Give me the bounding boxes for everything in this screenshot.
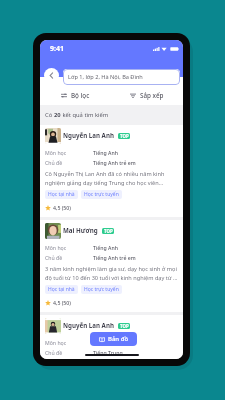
staticText: Tiếng Anh — [93, 149, 119, 156]
staticText: 4,5 (50) — [53, 299, 71, 306]
staticText: Tiếng Trung — [93, 349, 123, 356]
button[interactable]: Back — [44, 68, 59, 83]
staticText: kết quả tìm kiếm — [61, 111, 109, 119]
button[interactable]: Mai Hương — [40, 220, 183, 312]
staticText: TOP — [120, 133, 129, 139]
staticText: Mai Hương — [63, 226, 98, 234]
staticText: 9:41 — [50, 44, 64, 54]
staticText: Bộ lọc — [71, 91, 90, 100]
staticText: Học trực tuyến — [84, 191, 119, 198]
staticText: Nguyễn Lan Anh — [63, 131, 114, 139]
staticText: Cô Nguyễn Thị Lan Anh đã có nhiều năm ki… — [45, 170, 178, 186]
button[interactable]: Học trực tuyến — [81, 190, 122, 199]
staticText: Học tại nhà — [48, 286, 75, 293]
staticText: Chủ đề — [45, 349, 63, 356]
staticText: TOP — [120, 323, 129, 329]
staticText: Có — [45, 111, 54, 119]
staticText: Lớp 1, lớp 2, Hà Nội, Ba Đình — [68, 73, 143, 81]
staticText: Sắp xếp — [140, 91, 164, 100]
button[interactable]: Học trực tuyến — [81, 285, 122, 294]
staticText: Tiếng Anh trẻ em — [93, 254, 136, 261]
button[interactable]: Học tại nhà — [45, 285, 78, 294]
staticText: 4,5 (50) — [53, 204, 71, 211]
staticText: 20 — [54, 111, 61, 119]
button[interactable]: Bản đồ — [90, 332, 137, 346]
staticText: Tiếng Anh trẻ em — [93, 159, 136, 166]
staticText: Môn học — [45, 149, 67, 156]
staticText: Tiếng Anh — [93, 244, 119, 251]
staticText: Nguyễn Lan Anh — [63, 321, 114, 329]
button[interactable]: Bộ lọc — [40, 91, 111, 100]
staticText: Môn học — [45, 244, 67, 251]
staticText: Tiếng Anh — [93, 339, 119, 346]
staticText: Chủ đề — [45, 254, 63, 261]
button[interactable]: Nguyễn Lan Anh — [40, 315, 183, 359]
button[interactable]: Nguyễn Lan Anh — [40, 125, 183, 217]
staticText: Môn học — [45, 339, 67, 346]
staticText: Học trực tuyến — [84, 286, 119, 293]
staticText: Học tại nhà — [48, 191, 75, 198]
staticText: Chủ đề — [45, 159, 63, 166]
staticText: TOP — [104, 228, 113, 234]
staticText: 3 năm kinh nghiệm làm gia sư, dạy học si… — [45, 265, 178, 281]
button[interactable]: Lớp 1, lớp 2, Hà Nội, Ba Đình — [63, 69, 180, 85]
button[interactable]: Học tại nhà — [45, 190, 78, 199]
staticText: Bản đồ — [108, 335, 129, 343]
button[interactable]: Sắp xếp — [111, 91, 183, 100]
